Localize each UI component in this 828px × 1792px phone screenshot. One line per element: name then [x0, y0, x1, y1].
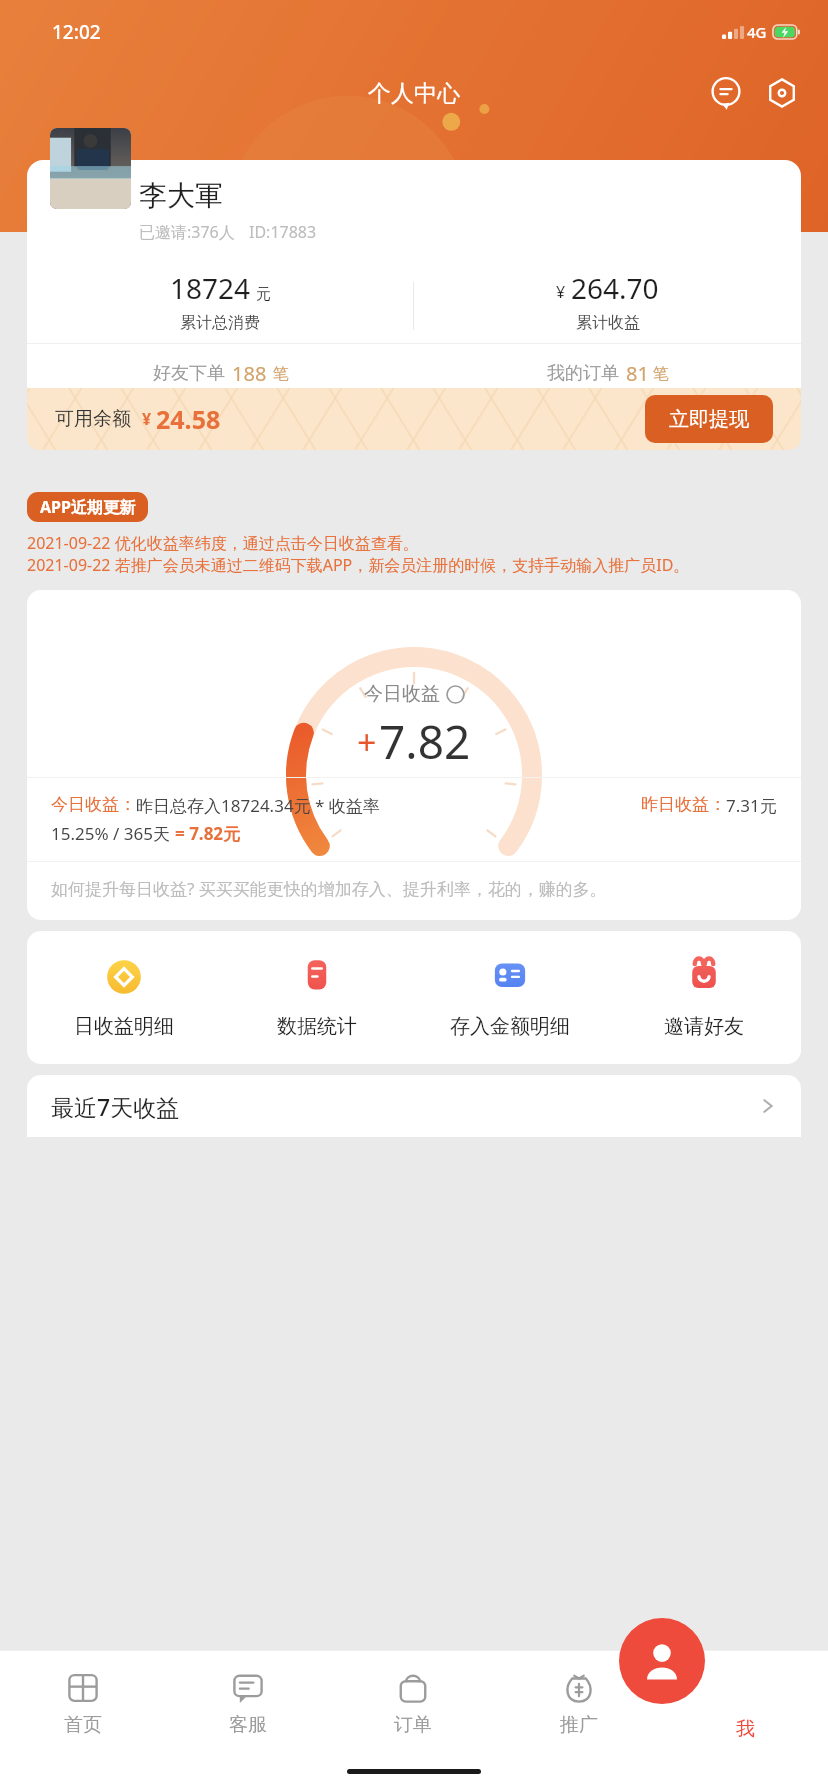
button[interactable]: 我 [662, 1650, 828, 1758]
staticText: 邀请好友 [664, 1014, 744, 1039]
staticText: 188 [232, 360, 267, 387]
staticText: 昨日总存入18724.34元 * 收益率 [136, 794, 380, 817]
staticText: 2021-09-22 优化收益率纬度，通过点击今日收益查看。 [27, 532, 419, 554]
staticText: 如何提升每日收益? 买买买能更快的增加存入、提升利率，花的，赚的多。 [51, 877, 777, 900]
staticText: 12:02 [52, 19, 101, 45]
staticText: = 7.82元 [175, 822, 241, 845]
button[interactable]: 立即提现 [645, 395, 773, 443]
button[interactable]: 好友下单 [27, 344, 414, 402]
staticText: 已邀请:376人 [139, 221, 235, 243]
button[interactable]: 最近7天收益 [27, 1075, 801, 1137]
button[interactable]: 数据统计 [220, 931, 413, 1064]
staticText: 昨日收益： [641, 794, 726, 815]
staticText: 日收益明细 [74, 1014, 174, 1039]
staticText: 81 [626, 360, 649, 387]
staticText: 可用余额 [55, 407, 131, 431]
button[interactable]: APP近期更新 [40, 496, 135, 518]
staticText: ¥ [556, 281, 566, 303]
staticText: ¥ [142, 408, 152, 430]
button[interactable]: 今日收益： [51, 794, 777, 845]
staticText: 元 [256, 285, 271, 304]
staticText: 我的订单 [547, 362, 619, 385]
button[interactable]: 邀请好友 [607, 931, 801, 1064]
button[interactable]: 我的订单 [414, 344, 801, 402]
staticText: 推广 [560, 1713, 598, 1737]
staticText: 李大軍 [139, 178, 223, 213]
staticText: 15.25% / 365天 [51, 822, 175, 845]
button[interactable]: 我 [619, 1618, 705, 1704]
button[interactable]: 消息 [704, 71, 748, 115]
staticText: 笔 [273, 364, 289, 384]
staticText: + [357, 719, 377, 765]
staticText: 4G [747, 22, 767, 42]
button[interactable]: 头像 [50, 128, 131, 209]
staticText: 累计收益 [576, 313, 640, 333]
staticText: APP近期更新 [40, 496, 135, 518]
staticText: 累计总消费 [180, 313, 260, 333]
staticText: 7.31元 [726, 794, 777, 817]
button[interactable]: 存入金额明细 [413, 931, 607, 1064]
staticText: 264.70 [571, 269, 659, 307]
staticText: 个人中心 [368, 79, 460, 108]
staticText: 数据统计 [277, 1014, 357, 1039]
staticText: 客服 [229, 1713, 267, 1737]
button[interactable]: 设置 [760, 71, 804, 115]
staticText: 7.82 [379, 710, 471, 773]
button[interactable]: 18724 [27, 269, 413, 343]
staticText: 最近7天收益 [51, 1091, 180, 1122]
staticText: 24.58 [156, 402, 221, 436]
button[interactable]: ¥ [414, 269, 801, 343]
staticText: 2021-09-22 若推广会员未通过二维码下载APP，新会员注册的时候，支持手… [27, 554, 690, 576]
staticText: 首页 [64, 1713, 102, 1737]
staticText: 我 [736, 1717, 755, 1741]
staticText: 今日收益 [364, 682, 440, 706]
staticText: 存入金额明细 [450, 1014, 570, 1039]
staticText: 订单 [394, 1713, 432, 1737]
button[interactable]: 客服 [165, 1650, 330, 1758]
staticText: ID:17883 [249, 221, 317, 243]
button[interactable]: 订单 [330, 1650, 496, 1758]
button[interactable]: 推广 [496, 1650, 662, 1758]
staticText: 笔 [653, 364, 669, 384]
staticText: 今日收益： [51, 794, 136, 815]
button[interactable]: 首页 [0, 1650, 165, 1758]
staticText: 立即提现 [669, 407, 749, 432]
button[interactable]: 日收益明细 [27, 931, 220, 1064]
staticText: 好友下单 [153, 362, 225, 385]
staticText: 18724 [170, 269, 251, 307]
